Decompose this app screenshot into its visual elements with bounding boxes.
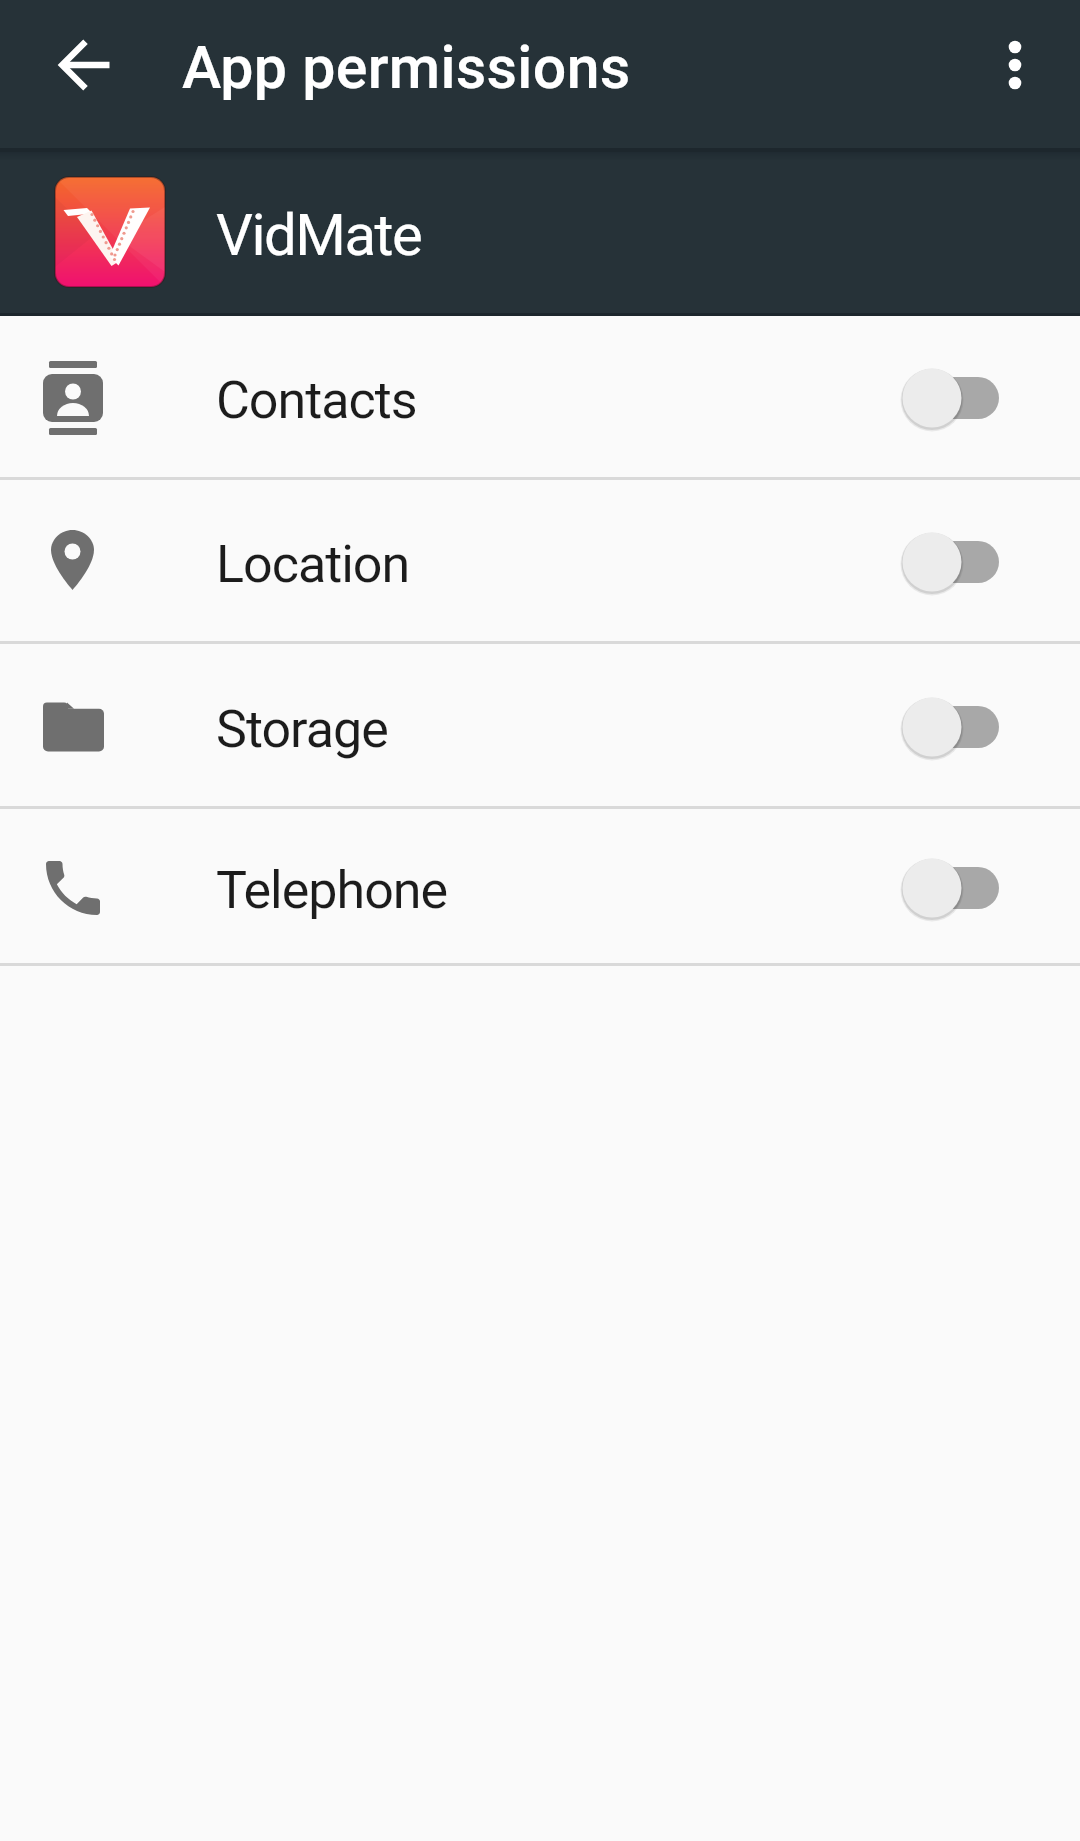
staticText: VidMate <box>216 201 422 269</box>
staticText: Location <box>216 534 410 595</box>
button[interactable]: Location <box>0 480 1080 644</box>
staticText: Storage <box>216 699 388 760</box>
button[interactable]: Storage <box>0 644 1080 809</box>
button[interactable] <box>50 29 122 101</box>
button[interactable]: Contacts <box>0 316 1080 480</box>
staticText: Contacts <box>216 370 417 431</box>
staticText: App permissions <box>182 33 631 102</box>
button[interactable]: Telephone <box>0 809 1080 966</box>
staticText: Telephone <box>216 860 448 921</box>
button[interactable] <box>984 29 1046 101</box>
